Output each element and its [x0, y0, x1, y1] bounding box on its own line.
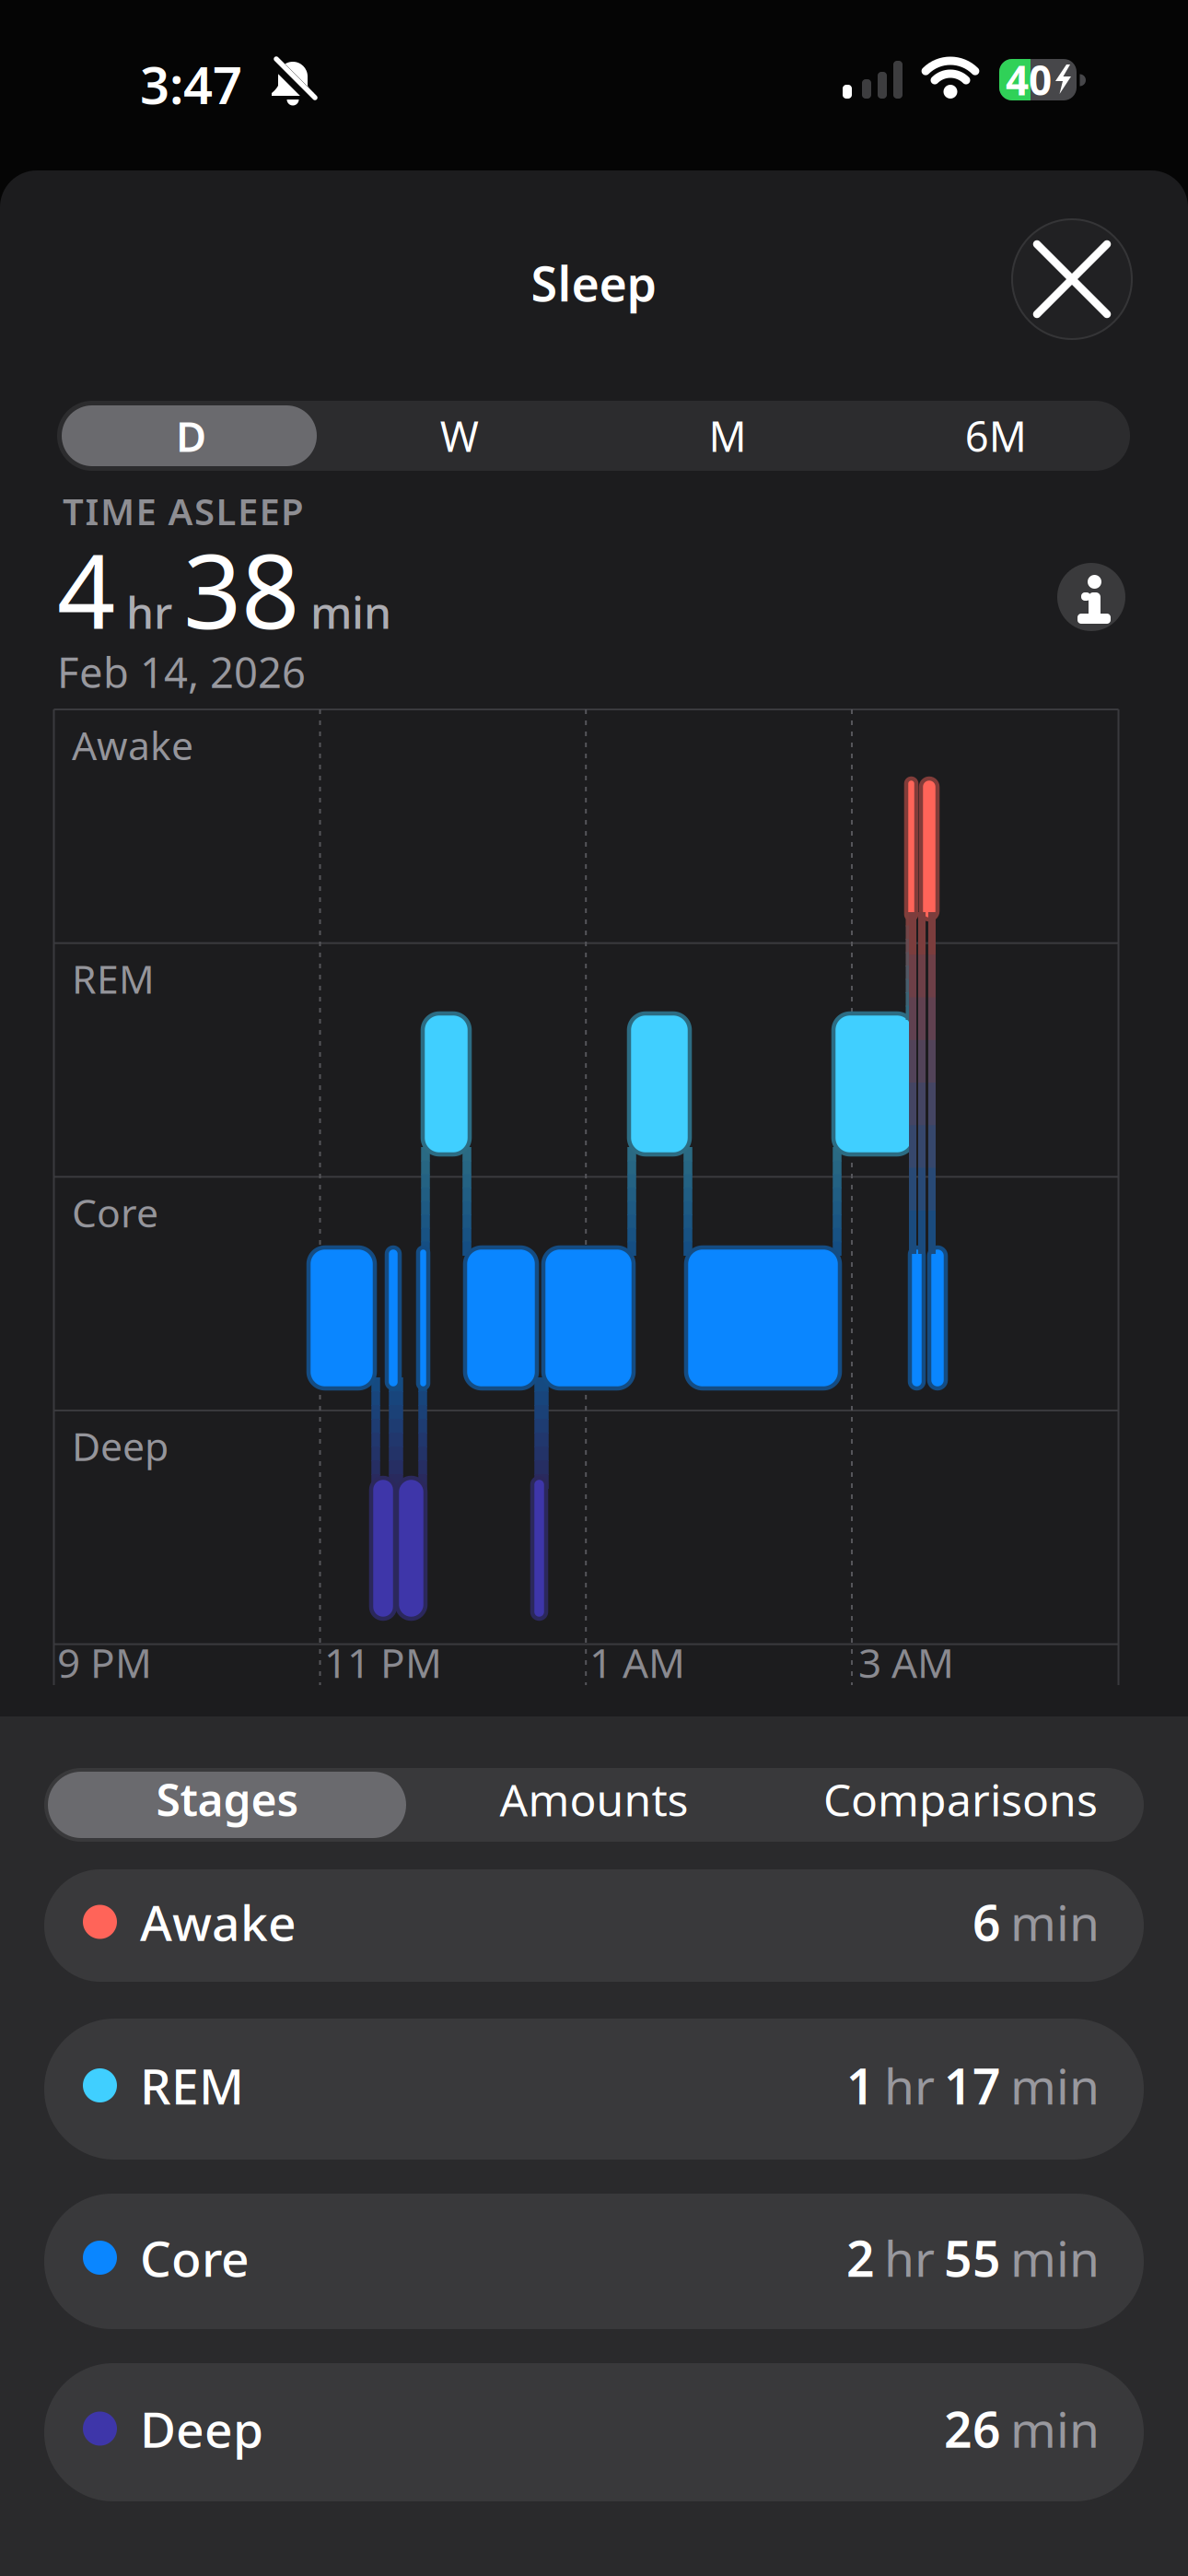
- staticText: REM: [72, 952, 155, 1005]
- staticText: Core: [140, 2225, 250, 2290]
- staticText: min: [1010, 2225, 1100, 2290]
- staticText: 3:47: [140, 50, 242, 118]
- staticText: Feb 14, 2026: [57, 644, 306, 699]
- staticText: 6M: [965, 408, 1027, 464]
- staticText: hr: [884, 2053, 935, 2118]
- button[interactable]: D: [57, 401, 325, 471]
- staticText: 26: [944, 2396, 1001, 2461]
- staticText: 1: [846, 2053, 875, 2118]
- staticText: min: [1010, 2396, 1100, 2461]
- button[interactable]: Stages: [44, 1768, 411, 1842]
- staticText: min: [1010, 1889, 1100, 1954]
- staticText: 2: [846, 2225, 875, 2290]
- staticText: Awake: [140, 1889, 297, 1954]
- staticText: Comparisons: [823, 1770, 1098, 1829]
- staticText: Sleep: [531, 251, 657, 315]
- staticText: Deep: [140, 2396, 263, 2461]
- button[interactable]: REM: [44, 2019, 1144, 2160]
- staticText: 4: [57, 521, 115, 657]
- staticText: M: [709, 408, 746, 464]
- staticText: Deep: [72, 1420, 169, 1472]
- staticText: hr: [884, 2225, 935, 2290]
- staticText: 17: [944, 2053, 1001, 2118]
- staticText: 9 PM: [57, 1635, 152, 1689]
- button[interactable]: Core: [44, 2194, 1144, 2329]
- button[interactable]: Amounts: [411, 1768, 777, 1842]
- staticText: D: [176, 408, 206, 464]
- staticText: min: [310, 582, 391, 641]
- staticText: Stages: [156, 1770, 299, 1829]
- button[interactable]: Close: [1012, 219, 1132, 339]
- button[interactable]: Comparisons: [777, 1768, 1144, 1842]
- button[interactable]: M: [594, 401, 862, 471]
- staticText: 11 PM: [324, 1635, 442, 1689]
- button[interactable]: Awake: [44, 1869, 1144, 1982]
- button[interactable]: 6M: [862, 401, 1130, 471]
- button[interactable]: Deep: [44, 2363, 1144, 2501]
- staticText: min: [1010, 2053, 1100, 2118]
- staticText: Core: [72, 1186, 158, 1238]
- staticText: 3 AM: [858, 1635, 954, 1689]
- staticText: 6: [973, 1889, 1001, 1954]
- staticText: Amounts: [500, 1770, 688, 1829]
- staticText: W: [440, 408, 479, 464]
- button[interactable]: W: [325, 401, 593, 471]
- staticText: Awake: [72, 719, 193, 771]
- button[interactable]: About Time Asleep: [1057, 563, 1125, 631]
- staticText: REM: [140, 2053, 244, 2118]
- staticText: 55: [944, 2225, 1001, 2290]
- staticText: 40: [1006, 53, 1052, 107]
- staticText: TIME ASLEEP: [63, 486, 304, 535]
- staticText: 1 AM: [589, 1635, 685, 1689]
- staticText: 38: [183, 521, 299, 657]
- staticText: hr: [126, 582, 172, 641]
